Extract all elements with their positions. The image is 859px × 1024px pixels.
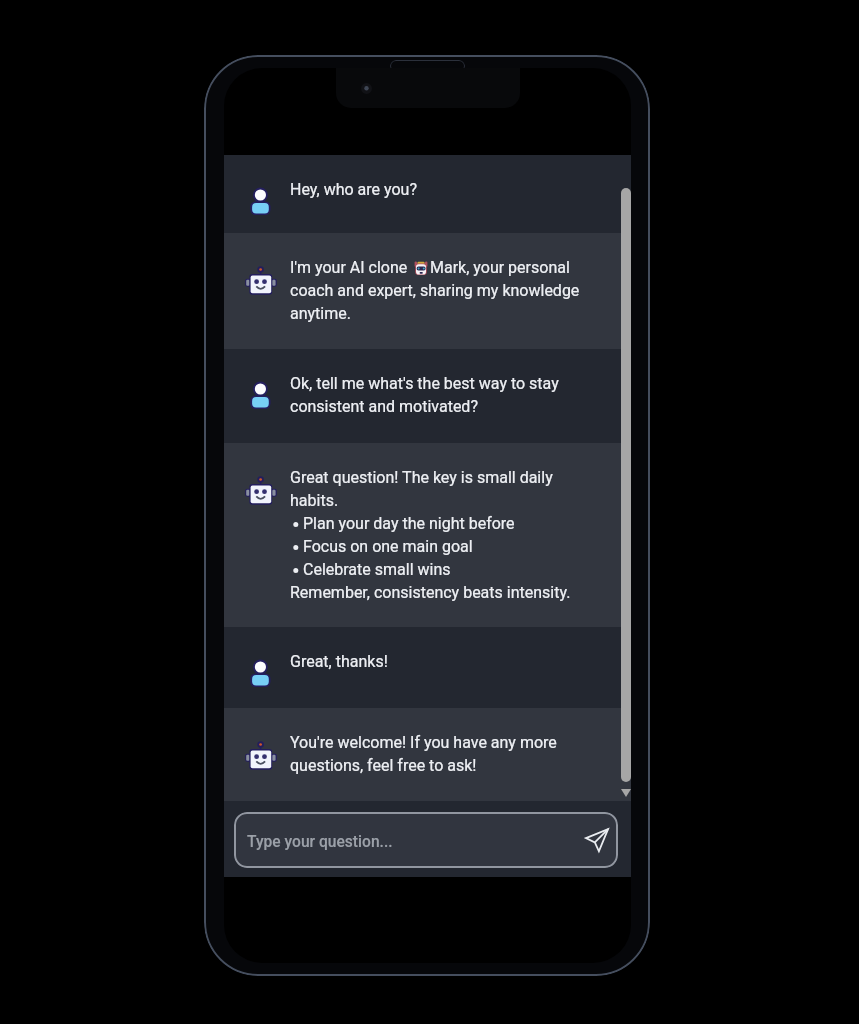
- staticText: Celebrate small wins: [303, 557, 451, 580]
- staticText: Remember, consistency beats intensity.: [290, 580, 571, 603]
- button[interactable]: Great, thanks!: [224, 627, 631, 708]
- button[interactable]: Ok, tell me what's the best way to stay: [224, 349, 631, 443]
- button[interactable]: Great question! The key is small daily: [224, 443, 631, 627]
- button[interactable]: You're welcome! If you have any more: [224, 708, 631, 801]
- staticText: I'm your AI clone: [290, 255, 412, 278]
- staticText: questions, feel free to ask!: [290, 753, 477, 776]
- button[interactable]: I'm your AI clone: [224, 233, 631, 349]
- button[interactable]: Hey, who are you?: [224, 155, 631, 233]
- staticText: Plan your day the night before: [303, 511, 515, 534]
- button[interactable]: Type your question...: [234, 812, 618, 868]
- staticText: anytime.: [290, 301, 351, 324]
- staticText: Focus on one main goal: [303, 534, 473, 557]
- staticText: Type your question...: [247, 833, 393, 851]
- button[interactable]: Send: [585, 828, 609, 852]
- staticText: habits.: [290, 488, 339, 511]
- staticText: Mark, your personal: [430, 255, 570, 278]
- staticText: coach and expert, sharing my knowledge: [290, 278, 580, 301]
- staticText: Great, thanks!: [290, 649, 388, 672]
- staticText: Hey, who are you?: [290, 177, 417, 200]
- staticText: Great question! The key is small daily: [290, 465, 553, 488]
- staticText: Ok, tell me what's the best way to stay: [290, 371, 559, 394]
- staticText: You're welcome! If you have any more: [290, 730, 557, 753]
- staticText: consistent and motivated?: [290, 394, 478, 417]
